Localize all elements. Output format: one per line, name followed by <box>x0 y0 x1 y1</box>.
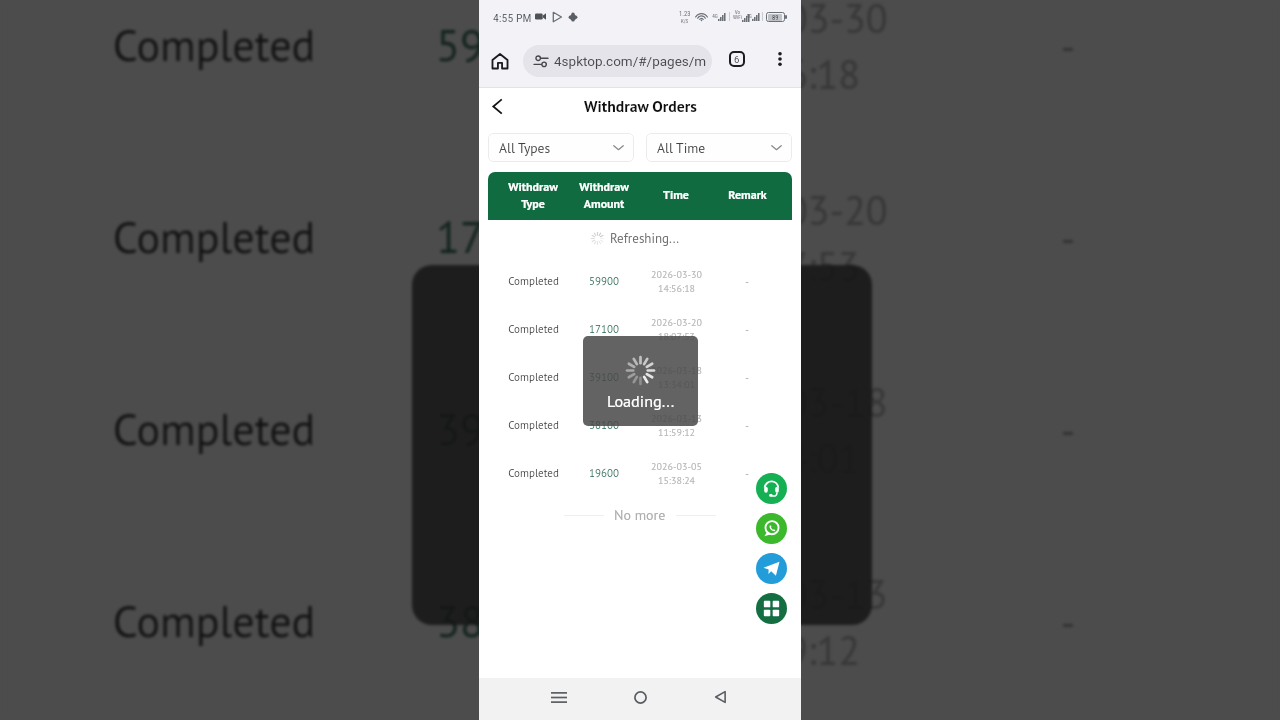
staticText: 4G <box>746 13 752 19</box>
staticText: - <box>1060 21 1076 73</box>
staticText: 2026-03-30 14:56:18 <box>651 268 702 295</box>
staticText: 17100 <box>589 322 619 336</box>
staticText: 2026-03-13 11:59:12 <box>684 569 888 677</box>
staticText: All Types <box>499 139 551 157</box>
staticText: - <box>1060 597 1076 649</box>
staticText: - <box>745 419 749 432</box>
staticText: 2026-03-05 15:38:24 <box>651 460 702 487</box>
button[interactable]: Back <box>482 91 512 121</box>
staticText: 17100 <box>436 209 556 265</box>
button[interactable]: Back <box>704 681 736 713</box>
staticText: Completed <box>112 17 316 73</box>
button[interactable]: All Types <box>488 133 634 162</box>
staticText: 39100 <box>436 401 556 457</box>
staticText: 1.23 <box>679 10 691 18</box>
button[interactable]: WhatsApp <box>756 513 787 544</box>
staticText: 59900 <box>436 17 556 73</box>
button[interactable]: More options <box>768 47 792 71</box>
staticText: 59900 <box>589 274 619 288</box>
staticText: 2026-03-30 14:56:18 <box>684 0 888 101</box>
staticText: Loading... <box>508 485 780 569</box>
staticText: K/S <box>681 18 689 24</box>
button[interactable]: Telegram <box>756 553 787 584</box>
staticText: - <box>1060 213 1076 265</box>
staticText: Completed <box>112 209 316 265</box>
staticText: All Time <box>657 139 706 157</box>
staticText: - <box>745 323 749 336</box>
staticText: Vo WiFi <box>733 9 742 20</box>
staticText: 2026-03-13 11:59:12 <box>651 412 702 439</box>
staticText: 4spktop.com/#/pages/m <box>554 53 707 69</box>
staticText: Withdraw Amount <box>579 179 629 211</box>
staticText: Withdraw Orders <box>584 96 697 116</box>
staticText: 2026-03-18 13:34:01 <box>651 364 702 391</box>
staticText: 38100 <box>589 418 619 432</box>
staticText: 89 <box>772 14 779 21</box>
staticText: 4G <box>712 13 718 19</box>
staticText: 2026-03-20 18:07:53 <box>651 316 702 343</box>
staticText: Completed <box>508 466 559 480</box>
staticText: Completed <box>508 274 559 288</box>
button[interactable]: All Time <box>646 133 792 162</box>
staticText: Refreshing... <box>610 230 680 247</box>
staticText: 6 <box>734 54 740 65</box>
staticText: Withdraw Type <box>508 179 558 211</box>
button[interactable]: Home <box>624 681 656 713</box>
staticText: Completed <box>112 593 316 649</box>
button[interactable]: Customer support <box>756 473 787 504</box>
button[interactable]: 4spktop.com/#/pages/m <box>523 45 712 77</box>
button[interactable]: Menu <box>756 593 787 624</box>
staticText: Completed <box>508 418 559 432</box>
staticText: Loading... <box>607 391 675 412</box>
staticText: No more <box>614 506 666 524</box>
staticText: 19600 <box>589 466 619 480</box>
staticText: Remark <box>728 187 767 203</box>
staticText: Completed <box>508 322 559 336</box>
staticText: 38100 <box>436 593 556 649</box>
staticText: 4:55 PM <box>493 11 532 25</box>
staticText: 2026-03-20 18:07:53 <box>684 185 888 293</box>
staticText: Completed <box>112 401 316 457</box>
staticText: - <box>1060 405 1076 457</box>
staticText: - <box>745 371 749 384</box>
staticText: - <box>745 275 749 288</box>
staticText: 39100 <box>589 370 619 384</box>
button[interactable]: Home <box>486 47 513 74</box>
staticText: 2026-03-18 13:34:01 <box>684 377 888 485</box>
button[interactable]: Tabs <box>724 46 750 72</box>
staticText: Time <box>663 187 689 203</box>
staticText: Completed <box>508 370 559 384</box>
button[interactable]: Recent apps <box>543 681 575 713</box>
staticText: - <box>745 467 749 480</box>
